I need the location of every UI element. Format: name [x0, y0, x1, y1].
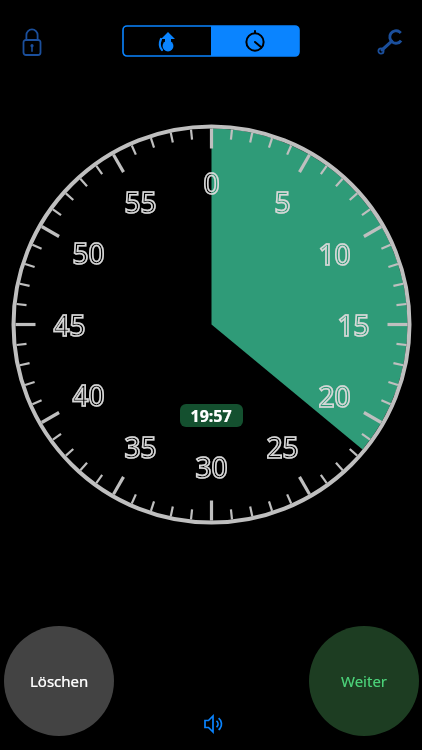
button[interactable]: Stopwatch: [211, 26, 299, 56]
button[interactable]: Lock: [12, 22, 52, 62]
staticText: Löschen: [30, 671, 89, 691]
button[interactable]: Löschen: [4, 626, 114, 736]
button[interactable]: Settings: [370, 22, 410, 62]
staticText: Weiter: [341, 671, 388, 691]
button[interactable]: Sound: [193, 706, 229, 742]
button[interactable]: Countdown timer: [123, 26, 211, 56]
button[interactable]: Timer dial, 21 minutes remaining: [0, 0, 422, 750]
button[interactable]: Weiter: [309, 626, 419, 736]
